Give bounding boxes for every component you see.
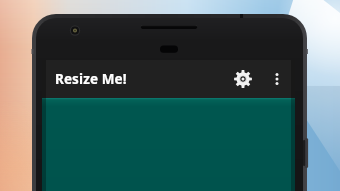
- button[interactable]: More options: [262, 64, 292, 94]
- button[interactable]: Settings: [224, 60, 262, 98]
- staticText: Resize Me!: [55, 70, 127, 88]
